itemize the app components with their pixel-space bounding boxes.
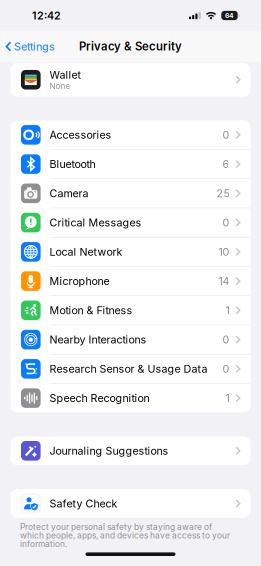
staticText: 6 [222,158,229,170]
staticText: Accessories [50,128,112,141]
staticText: Journaling Suggestions [50,444,169,457]
staticText: Bluetooth [50,158,96,170]
staticText: Speech Recognition [50,392,150,404]
staticText: Settings [14,40,55,53]
button[interactable]: Camera [10,179,250,208]
staticText: 0 [222,362,229,375]
staticText: 64 [225,11,234,20]
staticText: Privacy & Security [79,40,182,53]
staticText: 0 [222,128,229,141]
staticText: 14 [218,275,229,287]
staticText: None [50,81,71,91]
button[interactable]: Settings [0,35,55,58]
button[interactable]: Motion & Fitness [10,296,250,325]
staticText: Motion & Fitness [50,304,133,317]
staticText: 1 [225,304,229,317]
staticText: Protect your personal safety by staying … [20,522,230,549]
button[interactable]: Accessories [10,120,250,149]
button[interactable]: Bluetooth [10,150,250,178]
button[interactable]: Nearby Interactions [10,325,250,354]
staticText: Microphone [50,275,110,287]
staticText: 0 [222,333,229,346]
staticText: Local Network [50,245,123,258]
staticText: 0 [222,216,229,229]
staticText: 10 [218,245,229,258]
staticText: Safety Check [50,497,118,510]
button[interactable]: Speech Recognition [10,384,250,412]
button[interactable]: Safety Check [10,489,250,518]
button[interactable]: Critical Messages [10,208,250,237]
button[interactable]: Journaling Suggestions [10,436,250,465]
button[interactable]: Wallet [10,63,250,96]
staticText: Camera [50,187,89,200]
staticText: 12:42 [32,9,61,22]
staticText: 1 [225,392,229,404]
button[interactable]: Research Sensor & Usage Data [10,354,250,383]
staticText: Research Sensor & Usage Data [50,362,208,375]
button[interactable]: Local Network [10,237,250,266]
staticText: Wallet [50,68,81,81]
staticText: Critical Messages [50,216,142,229]
staticText: Nearby Interactions [50,333,147,346]
button[interactable]: Microphone [10,267,250,295]
staticText: 25 [216,187,229,200]
